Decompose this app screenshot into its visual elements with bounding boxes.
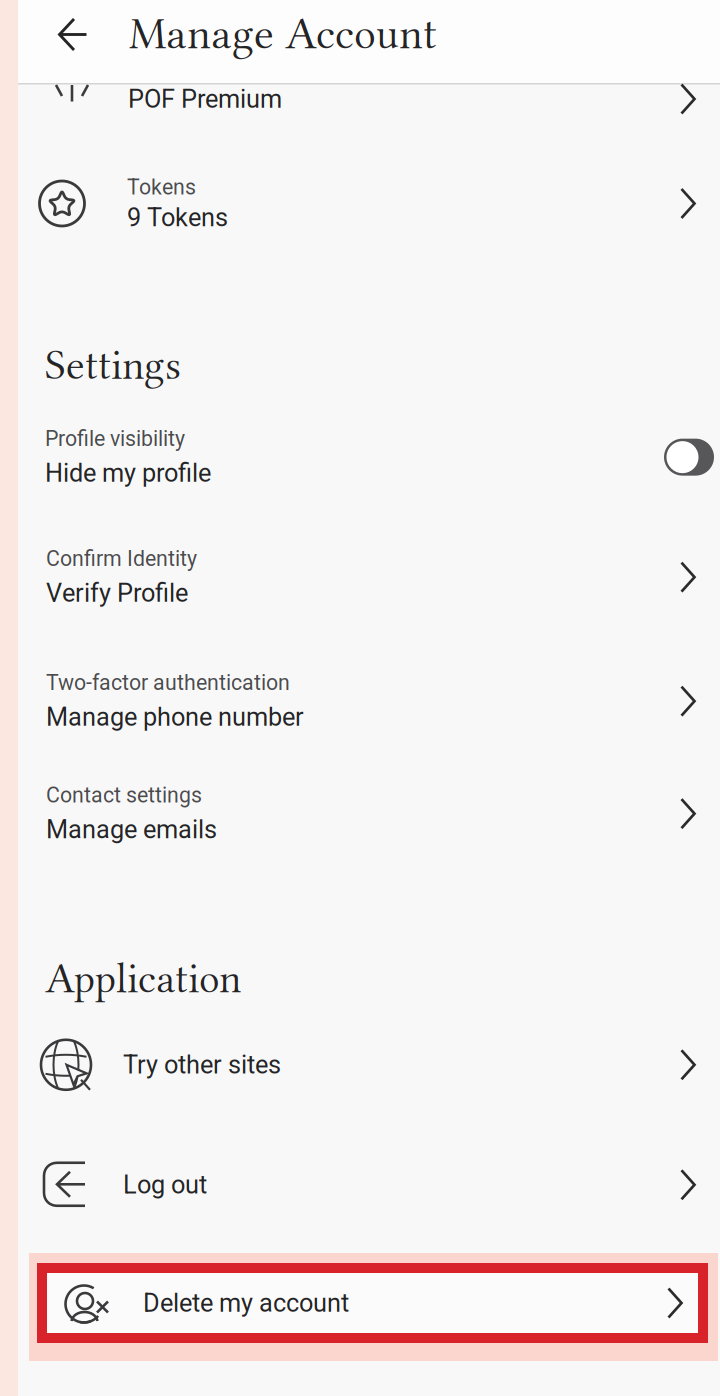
staticText: Manage emails: [46, 815, 217, 844]
staticText: 9 Tokens: [127, 203, 228, 232]
staticText: Manage Account: [129, 8, 437, 59]
button[interactable]: Confirm Identity: [0, 503, 720, 651]
button[interactable]: Profile visibility: [0, 389, 720, 503]
staticText: Tokens: [127, 175, 196, 200]
staticText: Log out: [123, 1170, 207, 1200]
button[interactable]: Delete my account: [0, 1253, 720, 1361]
button[interactable]: Contact settings: [0, 751, 720, 876]
staticText: Settings: [45, 340, 181, 389]
staticText: Confirm Identity: [46, 546, 197, 571]
staticText: Hide my profile: [45, 458, 211, 488]
staticText: Contact settings: [46, 783, 202, 808]
staticText: Manage phone number: [46, 702, 304, 732]
staticText: POF Premium: [128, 84, 282, 114]
button[interactable]: Log out: [0, 1125, 720, 1245]
button[interactable]: Back: [0, 0, 102, 82]
staticText: Delete my account: [143, 1288, 349, 1318]
staticText: Try other sites: [123, 1050, 281, 1080]
button[interactable]: Two-factor authentication: [0, 651, 720, 751]
button[interactable]: Tokens: [0, 113, 720, 264]
staticText: Application: [45, 954, 241, 1003]
staticText: Verify Profile: [46, 578, 188, 608]
button[interactable]: Try other sites: [0, 1009, 720, 1121]
staticText: Two-factor authentication: [46, 670, 290, 695]
staticText: Profile visibility: [45, 426, 185, 451]
